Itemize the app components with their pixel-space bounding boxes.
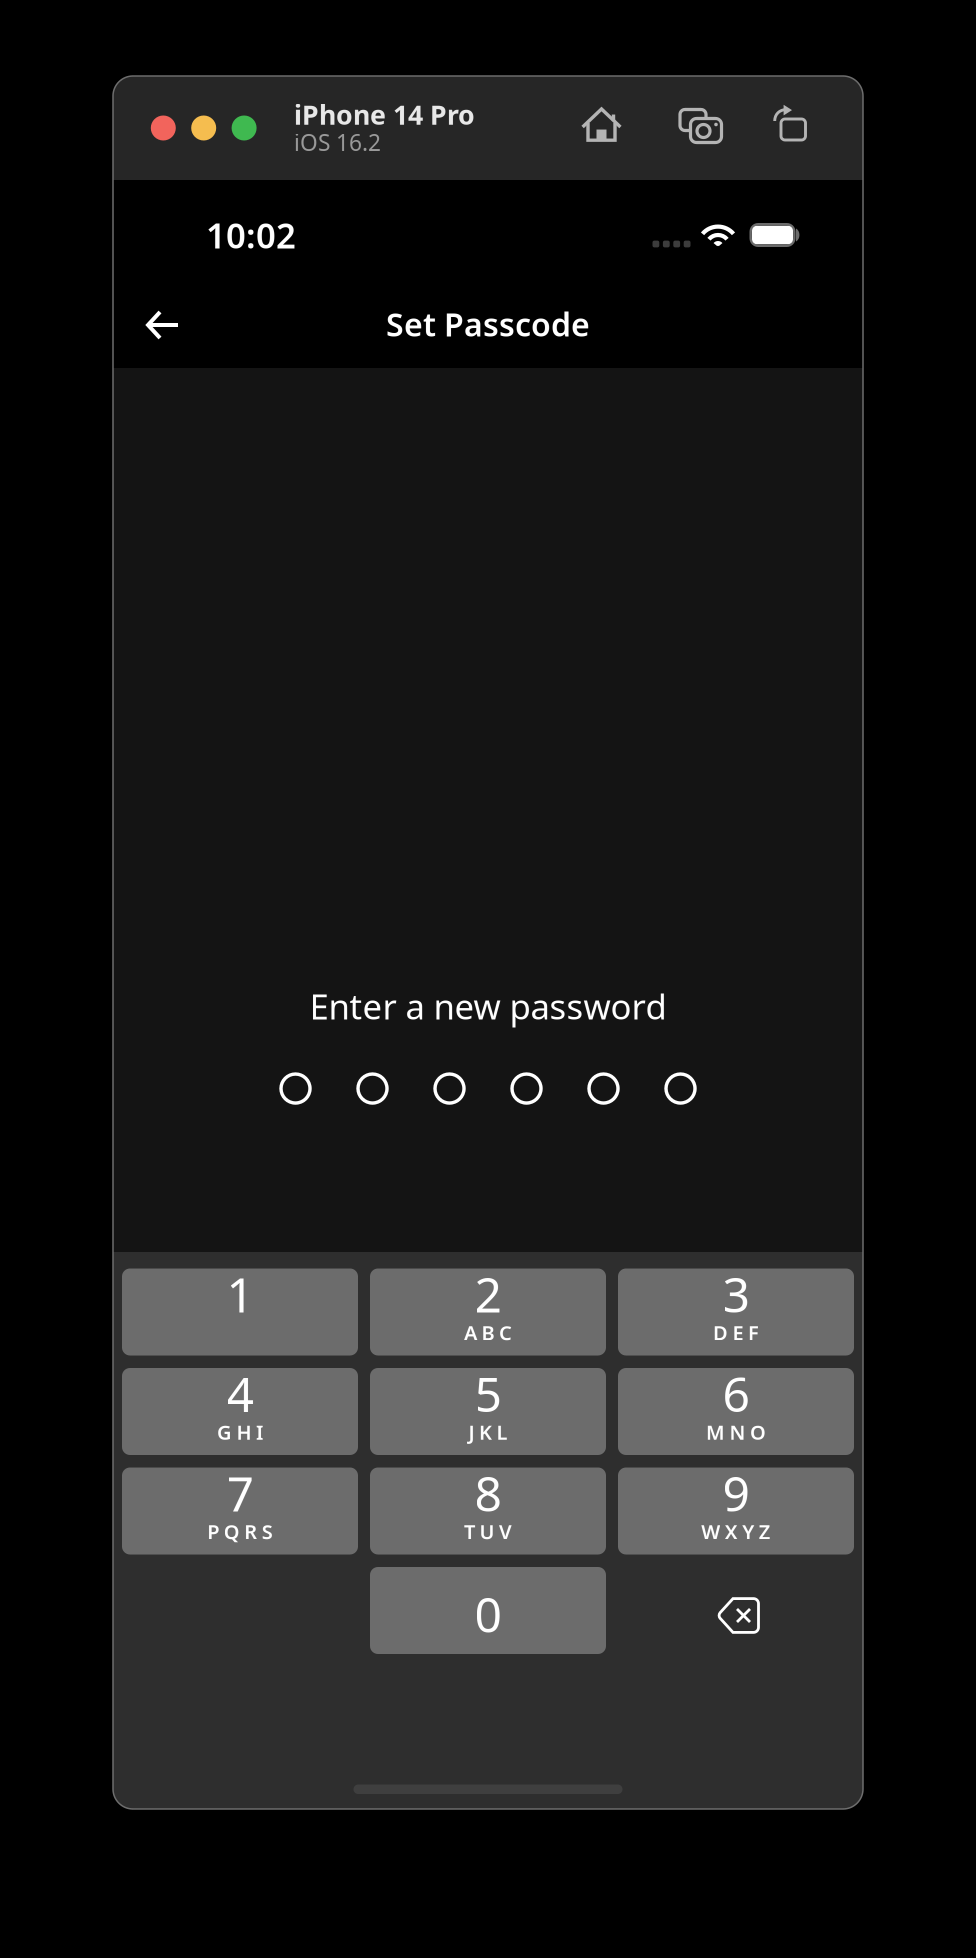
button[interactable]: 7 bbox=[122, 1467, 358, 1554]
staticText: 2 bbox=[474, 1262, 501, 1326]
staticText: iOS 16.2 bbox=[294, 127, 381, 157]
staticText: Y bbox=[742, 1518, 754, 1545]
staticText: S bbox=[262, 1518, 273, 1545]
staticText: C bbox=[499, 1319, 512, 1346]
staticText: 9 bbox=[722, 1461, 749, 1525]
staticText: G bbox=[217, 1419, 232, 1445]
staticText: 5 bbox=[474, 1362, 501, 1425]
staticText: 6 bbox=[722, 1362, 749, 1425]
staticText: E bbox=[732, 1319, 743, 1346]
staticText: 4 bbox=[226, 1362, 253, 1425]
staticText: T bbox=[464, 1518, 475, 1545]
staticText: Enter a new password bbox=[309, 983, 666, 1029]
staticText: 10:02 bbox=[206, 212, 296, 258]
button[interactable]: 0 bbox=[370, 1567, 606, 1654]
button[interactable]: Home bbox=[579, 106, 623, 150]
staticText: 1 bbox=[226, 1262, 253, 1326]
button[interactable]: 4 bbox=[122, 1368, 358, 1455]
button[interactable]: Delete bbox=[618, 1567, 854, 1654]
staticText: B bbox=[481, 1319, 494, 1346]
staticText: 0 bbox=[474, 1582, 501, 1646]
staticText: W bbox=[701, 1518, 720, 1545]
staticText: 7 bbox=[226, 1461, 253, 1525]
staticText: I bbox=[256, 1419, 263, 1445]
staticText: Z bbox=[759, 1518, 771, 1545]
staticText: 3 bbox=[722, 1262, 749, 1326]
staticText: R bbox=[244, 1518, 257, 1545]
staticText: J bbox=[468, 1419, 474, 1445]
staticText: F bbox=[748, 1319, 759, 1346]
staticText: K bbox=[479, 1419, 492, 1445]
staticText: iPhone 14 Pro bbox=[294, 97, 475, 132]
staticText: V bbox=[499, 1518, 512, 1545]
staticText: D bbox=[713, 1319, 728, 1346]
button[interactable]: 8 bbox=[370, 1467, 606, 1554]
button[interactable]: 3 bbox=[618, 1268, 854, 1355]
button[interactable]: Back bbox=[132, 294, 194, 356]
staticText: L bbox=[496, 1419, 507, 1445]
button[interactable]: 1 bbox=[122, 1268, 358, 1355]
staticText: A bbox=[464, 1319, 477, 1346]
staticText: H bbox=[236, 1419, 251, 1445]
staticText: N bbox=[729, 1419, 745, 1445]
button[interactable]: Screenshot bbox=[679, 106, 723, 150]
button[interactable]: Rotate bbox=[768, 106, 812, 150]
button[interactable]: 5 bbox=[370, 1368, 606, 1455]
staticText: O bbox=[750, 1419, 766, 1445]
button[interactable]: 9 bbox=[618, 1467, 854, 1554]
staticText: P bbox=[207, 1518, 219, 1545]
staticText: U bbox=[479, 1518, 494, 1545]
staticText: Set Passcode bbox=[386, 303, 590, 345]
staticText: M bbox=[706, 1419, 725, 1445]
staticText: X bbox=[725, 1518, 738, 1545]
button[interactable]: 2 bbox=[370, 1268, 606, 1355]
staticText: Q bbox=[224, 1518, 240, 1545]
button[interactable]: 6 bbox=[618, 1368, 854, 1455]
staticText: 8 bbox=[474, 1461, 501, 1525]
